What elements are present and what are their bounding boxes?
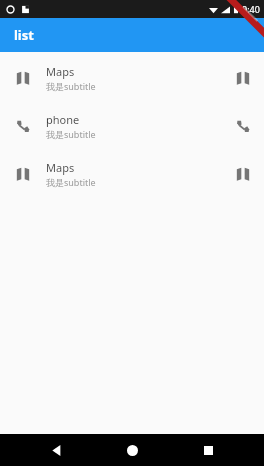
staticText: 我是subtitle [46,128,96,140]
button[interactable]: Maps [3,54,261,102]
button[interactable]: Back [36,434,76,466]
button[interactable]: phone [3,102,261,150]
button[interactable]: Maps [3,150,261,198]
button[interactable]: Recents [188,434,228,466]
button[interactable]: Home [112,434,152,466]
staticText: list [14,26,34,44]
staticText: Maps [46,64,75,79]
staticText: 我是subtitle [46,80,96,92]
staticText: 我是subtitle [46,176,96,188]
staticText: 9:40 [242,3,260,15]
staticText: Maps [46,160,75,175]
staticText: phone [46,112,80,127]
